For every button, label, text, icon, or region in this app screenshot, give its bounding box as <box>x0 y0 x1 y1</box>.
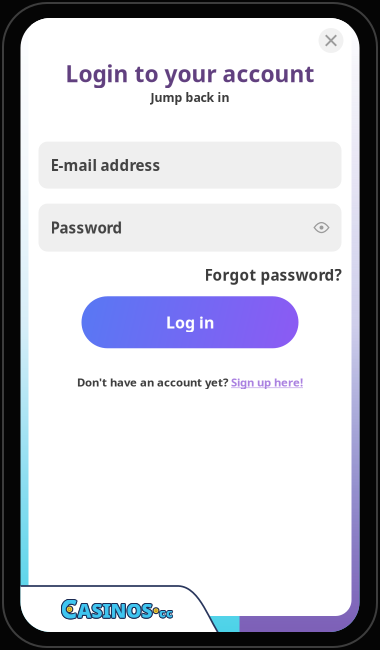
staticText: C <box>61 591 78 627</box>
staticText: Don't have an account yet? <box>77 374 228 390</box>
staticText: Sign up here! <box>231 374 303 390</box>
staticText: C <box>60 592 77 627</box>
staticText: Password <box>50 217 122 238</box>
staticText: ASINOS <box>76 597 151 623</box>
staticText: ASINOS <box>77 597 152 623</box>
staticText: C <box>61 590 78 625</box>
staticText: C <box>60 591 77 627</box>
staticText: cc <box>160 605 174 622</box>
staticText: cc <box>160 604 174 621</box>
staticText: ASINOS <box>77 597 152 623</box>
staticText: C <box>60 590 77 625</box>
staticText: C <box>60 591 77 626</box>
staticText: C <box>61 591 78 626</box>
staticText: ASINOS <box>77 598 152 624</box>
staticText: Login to your account <box>65 58 314 89</box>
button[interactable]: Show password <box>313 222 329 233</box>
staticText: E-mail address <box>50 155 160 175</box>
staticText: C <box>60 590 77 625</box>
staticText: C <box>59 591 76 626</box>
staticText: cc <box>158 604 172 621</box>
staticText: Forgot password? <box>204 265 341 285</box>
staticText: Jump back in <box>150 89 229 106</box>
button[interactable]: Close <box>318 28 343 53</box>
staticText: cc <box>158 605 172 622</box>
staticText: ASINOS <box>77 598 152 624</box>
staticText: ASINOS <box>78 597 153 623</box>
button[interactable]: Log in <box>81 296 298 348</box>
staticText: ASINOS <box>77 597 152 622</box>
button[interactable]: Sign up here! <box>231 374 303 390</box>
staticText: ASINOS <box>78 597 153 623</box>
staticText: cc <box>159 605 173 622</box>
staticText: ASINOS <box>78 598 153 624</box>
staticText: cc <box>159 604 173 621</box>
staticText: cc <box>158 604 172 621</box>
button[interactable]: Forgot password? <box>204 265 341 285</box>
staticText: cc <box>159 604 173 620</box>
staticText: Log in <box>166 311 214 333</box>
staticText: cc <box>160 604 174 621</box>
